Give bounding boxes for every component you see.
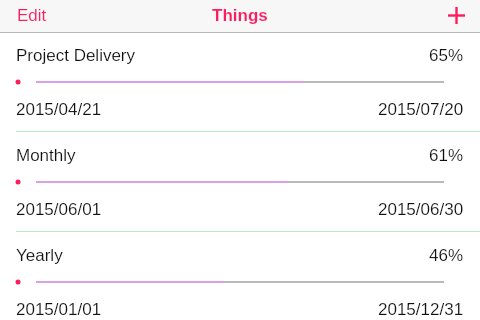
staticText: Edit bbox=[17, 6, 47, 25]
staticText: 2015/06/01 bbox=[16, 200, 102, 219]
button[interactable]: Edit bbox=[0, 3, 63, 30]
staticText: 65% bbox=[429, 46, 464, 65]
staticText: Monthly bbox=[16, 146, 76, 165]
button[interactable]: Project Delivery bbox=[0, 32, 480, 132]
staticText: Things bbox=[212, 6, 268, 25]
staticText: 2015/01/01 bbox=[16, 300, 102, 319]
staticText: 46% bbox=[429, 246, 464, 265]
button[interactable]: Add new item bbox=[434, 0, 480, 32]
staticText: 2015/07/20 bbox=[378, 100, 464, 119]
staticText: 2015/06/30 bbox=[378, 200, 464, 219]
button[interactable]: Yearly bbox=[0, 232, 480, 320]
button[interactable]: Monthly bbox=[0, 132, 480, 232]
staticText: 2015/04/21 bbox=[16, 100, 102, 119]
staticText: Yearly bbox=[16, 246, 63, 265]
staticText: Project Delivery bbox=[16, 46, 136, 65]
staticText: 2015/12/31 bbox=[378, 300, 464, 319]
staticText: 61% bbox=[429, 146, 464, 165]
